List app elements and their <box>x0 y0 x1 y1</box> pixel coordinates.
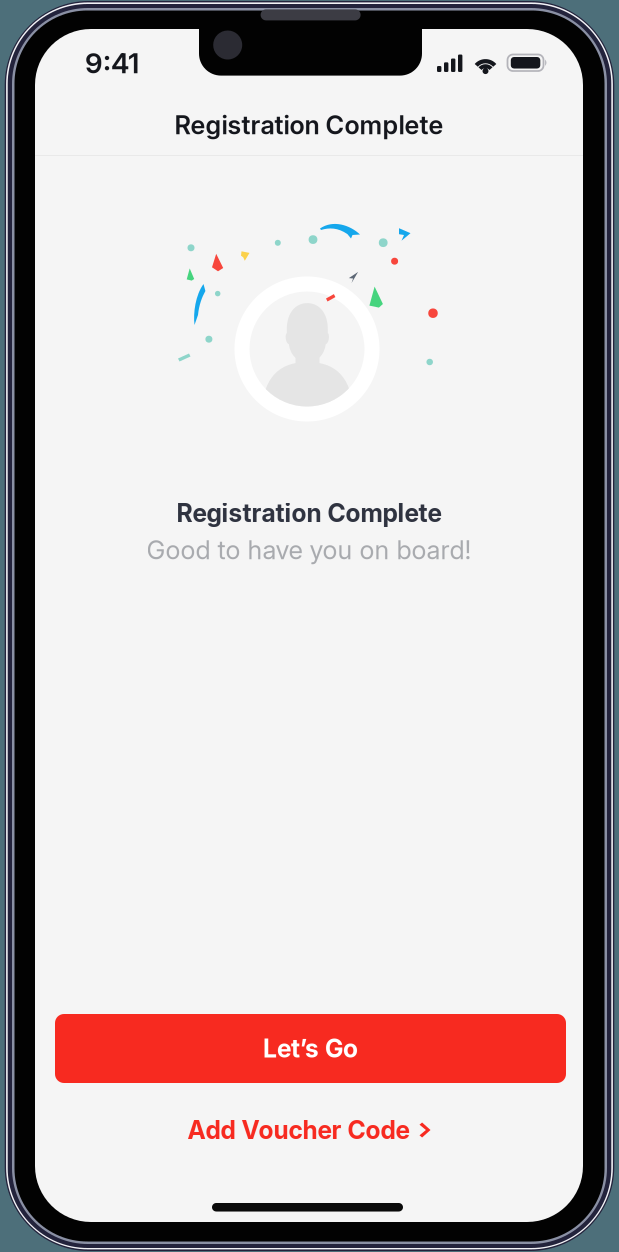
staticText: Registration Complete <box>176 498 441 528</box>
staticText: Good to have you on board! <box>146 535 471 565</box>
staticText: Let’s Go <box>263 1034 358 1063</box>
button[interactable]: Let’s Go <box>55 1014 566 1083</box>
staticText: Add Voucher Code <box>187 1115 409 1145</box>
staticText: 9:41 <box>85 46 139 80</box>
staticText: Registration Complete <box>174 110 443 140</box>
button[interactable]: Add Voucher Code <box>35 1108 583 1152</box>
